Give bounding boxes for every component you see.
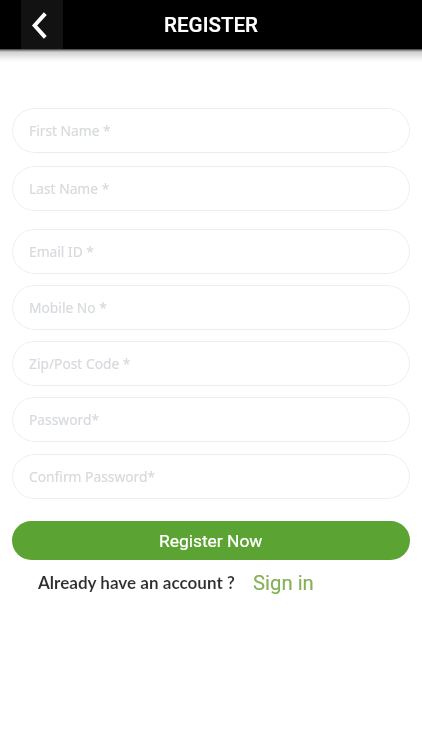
staticText: Mobile No * — [29, 298, 107, 317]
staticText: Register Now — [159, 531, 263, 551]
button[interactable]: Register Now — [12, 521, 410, 560]
staticText: Email ID * — [29, 242, 94, 261]
button[interactable]: First Name * — [12, 108, 410, 153]
button[interactable]: Mobile No * — [12, 285, 410, 330]
button[interactable]: Sign in — [253, 571, 314, 595]
button[interactable]: Confirm Password* — [12, 454, 410, 499]
button[interactable]: Zip/Post Code * — [12, 341, 410, 386]
staticText: Already have an account ? — [38, 572, 235, 592]
staticText: Zip/Post Code * — [29, 354, 131, 373]
button[interactable]: Back — [21, 0, 63, 49]
button[interactable]: Email ID * — [12, 229, 410, 274]
button[interactable]: Already have an account ? — [38, 572, 235, 592]
staticText: Sign in — [253, 571, 314, 595]
button[interactable]: Last Name * — [12, 166, 410, 211]
staticText: First Name * — [29, 121, 111, 140]
staticText: Last Name * — [29, 179, 110, 198]
staticText: REGISTER — [0, 13, 422, 37]
button[interactable]: Password* — [12, 397, 410, 442]
staticText: Password* — [29, 410, 100, 429]
staticText: Confirm Password* — [29, 467, 156, 486]
